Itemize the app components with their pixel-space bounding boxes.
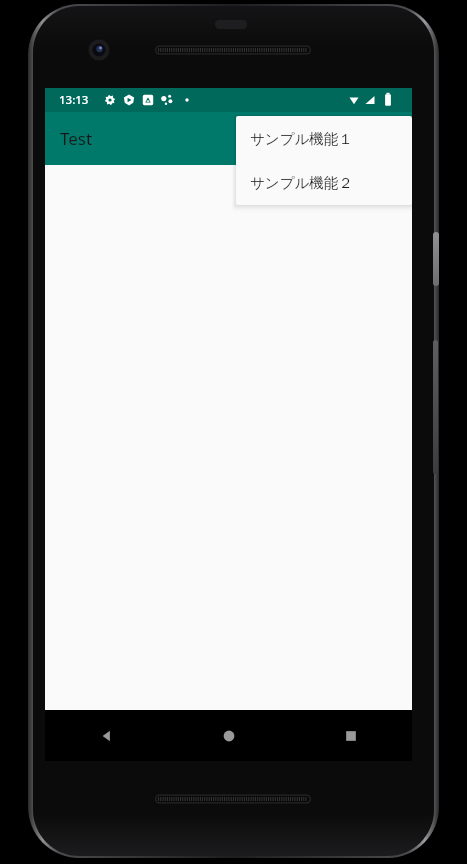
button[interactable]: サンプル機能１ — [236, 116, 412, 161]
staticText: Test — [60, 127, 93, 150]
staticText: サンプル機能１ — [250, 130, 353, 148]
staticText: サンプル機能２ — [250, 174, 353, 192]
button[interactable]: Recent apps — [290, 710, 412, 761]
button[interactable]: Back — [45, 710, 168, 761]
button[interactable]: サンプル機能２ — [236, 161, 412, 205]
button[interactable]: Home — [168, 710, 290, 761]
staticText: 13:13 — [59, 92, 89, 108]
